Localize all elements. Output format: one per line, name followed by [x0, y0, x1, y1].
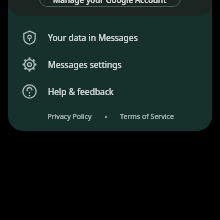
button[interactable]: Help & feedback [8, 78, 212, 105]
staticText: Your data in Messages [48, 32, 138, 44]
button[interactable]: Manage your Google Account [39, 0, 181, 7]
staticText: Terms of Service [120, 112, 174, 122]
staticText: Messages settings [48, 59, 122, 71]
button[interactable]: Privacy Policy [43, 109, 96, 125]
button[interactable]: Your data in Messages [8, 24, 212, 51]
staticText: Manage your Google Account [53, 0, 167, 5]
button[interactable]: Terms of Service [116, 109, 178, 125]
staticText: Help & feedback [48, 86, 114, 98]
staticText: Privacy Policy [47, 112, 92, 122]
button[interactable]: Messages settings [8, 51, 212, 78]
